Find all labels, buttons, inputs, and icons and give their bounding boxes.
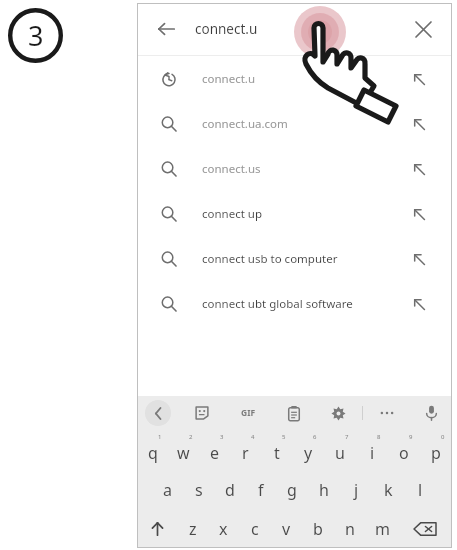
button[interactable]: Insert suggestion — [408, 248, 430, 270]
staticText: i — [370, 442, 375, 464]
button[interactable]: k — [372, 470, 404, 509]
staticText: a — [163, 479, 172, 501]
staticText: b — [313, 518, 323, 540]
staticText: 7 — [345, 433, 349, 441]
staticText: z — [189, 518, 197, 540]
staticText: g — [287, 479, 297, 501]
button[interactable]: v — [270, 509, 302, 548]
button[interactable]: n — [334, 509, 366, 548]
staticText: connect.u — [195, 20, 258, 38]
button[interactable]: 4 — [230, 430, 261, 470]
button[interactable]: Voice input — [418, 400, 444, 426]
button[interactable]: Insert suggestion — [408, 203, 430, 225]
button[interactable]: j — [340, 470, 372, 509]
button[interactable]: a — [152, 470, 183, 509]
button[interactable]: connect.ua.com — [137, 101, 452, 146]
button[interactable]: 5 — [261, 430, 292, 470]
staticText: n — [345, 518, 355, 540]
staticText: o — [399, 442, 409, 464]
button[interactable]: 8 — [356, 430, 388, 470]
button[interactable]: 2 — [168, 430, 199, 470]
staticText: 3 — [28, 17, 44, 54]
staticText: s — [195, 479, 203, 501]
staticText: 2 — [189, 433, 193, 441]
staticText: 3 — [220, 433, 224, 441]
button[interactable]: 0 — [420, 430, 452, 470]
staticText: m — [375, 518, 390, 540]
button[interactable]: z — [177, 509, 208, 548]
button[interactable]: Previous — [145, 400, 171, 426]
button[interactable]: d — [214, 470, 245, 509]
staticText: l — [418, 479, 423, 501]
staticText: r — [242, 442, 249, 464]
staticText: 4 — [251, 433, 255, 441]
button[interactable]: connect.u — [137, 56, 452, 101]
button[interactable]: Insert suggestion — [408, 113, 430, 135]
button[interactable]: h — [308, 470, 340, 509]
button[interactable]: Clipboard — [281, 400, 307, 426]
button[interactable]: connect up — [137, 191, 452, 236]
staticText: connect.u — [202, 71, 408, 87]
button[interactable]: GIF — [233, 398, 263, 428]
staticText: connect up — [202, 206, 408, 222]
button[interactable]: 7 — [324, 430, 356, 470]
button[interactable]: m — [366, 509, 398, 548]
staticText: v — [282, 518, 291, 540]
staticText: c — [251, 518, 259, 540]
button[interactable]: Back — [149, 12, 183, 46]
button[interactable]: connect.u — [195, 3, 406, 55]
staticText: x — [219, 518, 228, 540]
button[interactable]: l — [404, 470, 436, 509]
staticText: d — [225, 479, 235, 501]
button[interactable]: connect ubt global software — [137, 281, 452, 326]
staticText: y — [304, 442, 313, 464]
button[interactable]: g — [276, 470, 308, 509]
staticText: w — [177, 442, 190, 464]
button[interactable]: Shift — [137, 509, 177, 548]
staticText: h — [319, 479, 329, 501]
staticText: connect usb to computer — [202, 251, 408, 267]
staticText: connect ubt global software — [202, 296, 408, 312]
staticText: e — [210, 442, 220, 464]
button[interactable]: Clear — [406, 12, 440, 46]
button[interactable]: 9 — [388, 430, 420, 470]
staticText: 9 — [409, 433, 413, 441]
staticText: u — [335, 442, 345, 464]
staticText: connect.us — [202, 161, 408, 177]
staticText: 5 — [282, 433, 286, 441]
staticText: q — [148, 442, 158, 464]
staticText: f — [258, 479, 264, 501]
button[interactable]: Insert suggestion — [408, 68, 430, 90]
staticText: t — [274, 442, 280, 464]
staticText: GIF — [241, 407, 256, 419]
button[interactable]: s — [183, 470, 214, 509]
button[interactable]: Backspace — [398, 509, 452, 548]
button[interactable]: Insert suggestion — [408, 158, 430, 180]
staticText: j — [354, 479, 359, 501]
button[interactable]: connect usb to computer — [137, 236, 452, 281]
staticText: connect.ua.com — [202, 116, 408, 132]
staticText: 0 — [441, 433, 445, 441]
staticText: 1 — [158, 433, 162, 441]
staticText: 8 — [377, 433, 381, 441]
button[interactable]: More options — [374, 400, 400, 426]
button[interactable]: 1 — [137, 430, 168, 470]
staticText: p — [431, 442, 441, 464]
button[interactable]: 6 — [292, 430, 324, 470]
staticText: k — [384, 479, 393, 501]
button[interactable]: f — [245, 470, 276, 509]
button[interactable]: Insert suggestion — [408, 293, 430, 315]
button[interactable]: b — [302, 509, 334, 548]
staticText: 6 — [313, 433, 317, 441]
button[interactable]: c — [239, 509, 270, 548]
button[interactable]: x — [208, 509, 239, 548]
button[interactable]: connect.us — [137, 146, 452, 191]
button[interactable]: Emoji — [189, 400, 215, 426]
button[interactable]: 3 — [199, 430, 230, 470]
button[interactable]: Settings — [325, 400, 351, 426]
